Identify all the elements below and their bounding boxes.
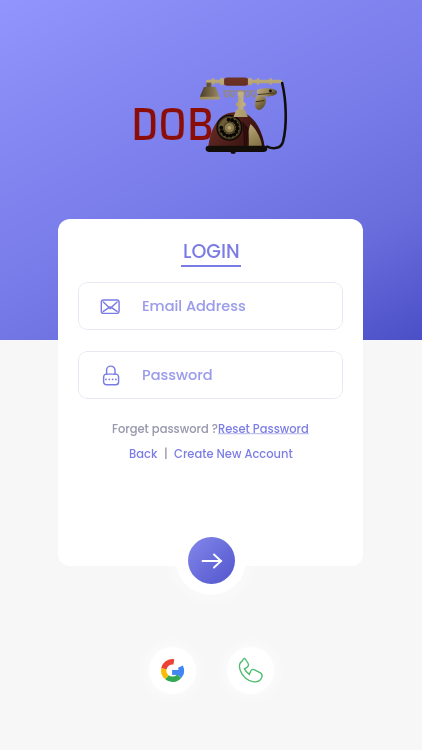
button[interactable]: Sign in with Google [149, 647, 196, 694]
staticText: LOGIN [183, 238, 240, 265]
button[interactable]: LOGIN [181, 238, 241, 267]
button[interactable]: Email Address [78, 282, 343, 330]
button[interactable]: Submit login [188, 537, 235, 584]
button[interactable]: Reset Password [218, 421, 309, 437]
staticText: DOB [131, 88, 214, 160]
button[interactable]: Sign in with phone number [227, 647, 274, 694]
staticText: Password [142, 365, 213, 385]
button[interactable]: Create New Account [174, 446, 293, 462]
staticText: Forget password ? [112, 421, 218, 437]
button[interactable]: Password [78, 351, 343, 399]
staticText: Email Address [142, 296, 246, 316]
staticText: | [158, 446, 174, 462]
button[interactable]: Back [129, 446, 158, 462]
